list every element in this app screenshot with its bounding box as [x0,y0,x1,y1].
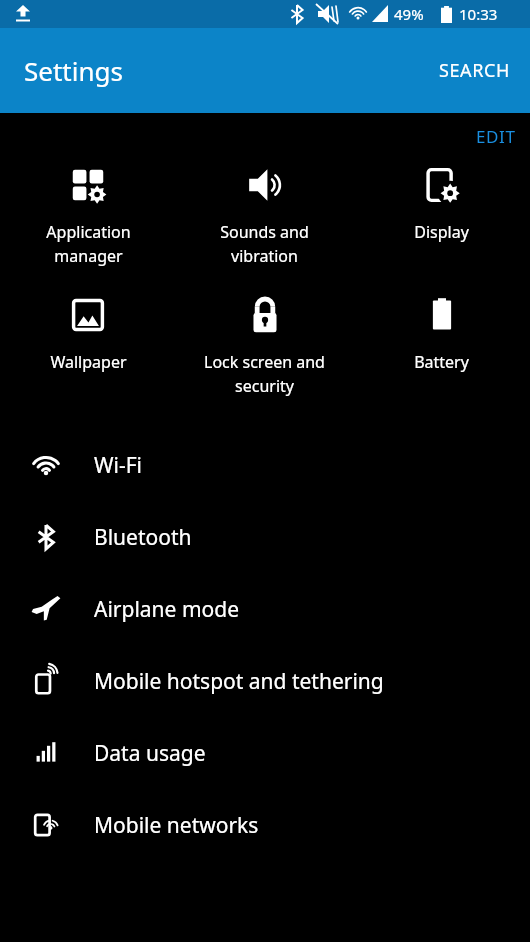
staticText: Wi-Fi [94,451,143,480]
staticText: Application manager [46,221,131,267]
staticText: Lock screen and security [204,351,325,397]
button[interactable]: Data usage [0,717,530,789]
button[interactable]: Mobile hotspot and tethering [0,645,530,717]
button[interactable]: Lock screen and security [176,289,353,399]
staticText: Settings [24,53,123,88]
staticText: 49% [394,4,424,24]
staticText: Wallpaper [50,351,127,373]
button[interactable]: Mobile networks [0,789,530,861]
staticText: EDIT [476,125,516,148]
staticText: Mobile hotspot and tethering [94,667,384,696]
button[interactable]: Wi-Fi [0,429,530,501]
staticText: Sounds and vibration [220,221,309,267]
staticText: Display [414,221,469,243]
staticText: Mobile networks [94,811,259,840]
staticText: 10:33 [459,4,498,24]
button[interactable]: Wallpaper [0,289,176,375]
button[interactable]: Application manager [0,159,176,269]
staticText: Airplane mode [94,595,240,624]
staticText: Data usage [94,739,206,768]
staticText: SEARCH [439,58,510,83]
button[interactable]: Bluetooth [0,501,530,573]
button[interactable]: Sounds and vibration [176,159,353,269]
button[interactable]: EDIT [462,117,530,156]
button[interactable]: Display [353,159,530,245]
staticText: Battery [414,351,469,373]
button[interactable]: Battery [353,289,530,375]
button[interactable]: SEARCH [419,40,530,101]
staticText: Bluetooth [94,523,192,552]
button[interactable]: Airplane mode [0,573,530,645]
